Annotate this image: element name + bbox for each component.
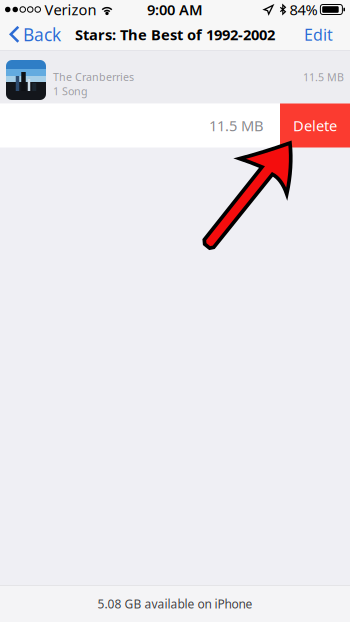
button[interactable]: The Cranberries — [0, 50, 350, 103]
staticText: 9:00 AM — [147, 0, 203, 19]
staticText: 84% — [289, 0, 317, 19]
button[interactable]: Back — [0, 19, 69, 50]
button[interactable]: Delete — [280, 103, 350, 147]
staticText: 11.5 MB — [303, 70, 344, 84]
staticText: 5.08 GB available on iPhone — [97, 596, 252, 612]
staticText: 1 Song — [53, 84, 88, 98]
staticText: Back — [23, 23, 61, 46]
staticText: Delete — [293, 116, 337, 135]
staticText: Verizon — [44, 0, 96, 19]
staticText: The Cranberries — [53, 70, 134, 84]
staticText: Stars: The Best of 1992-2002 — [75, 25, 275, 44]
button[interactable]: Edit — [292, 19, 350, 50]
staticText: 11.5 MB — [209, 116, 264, 135]
staticText: Edit — [304, 24, 333, 45]
